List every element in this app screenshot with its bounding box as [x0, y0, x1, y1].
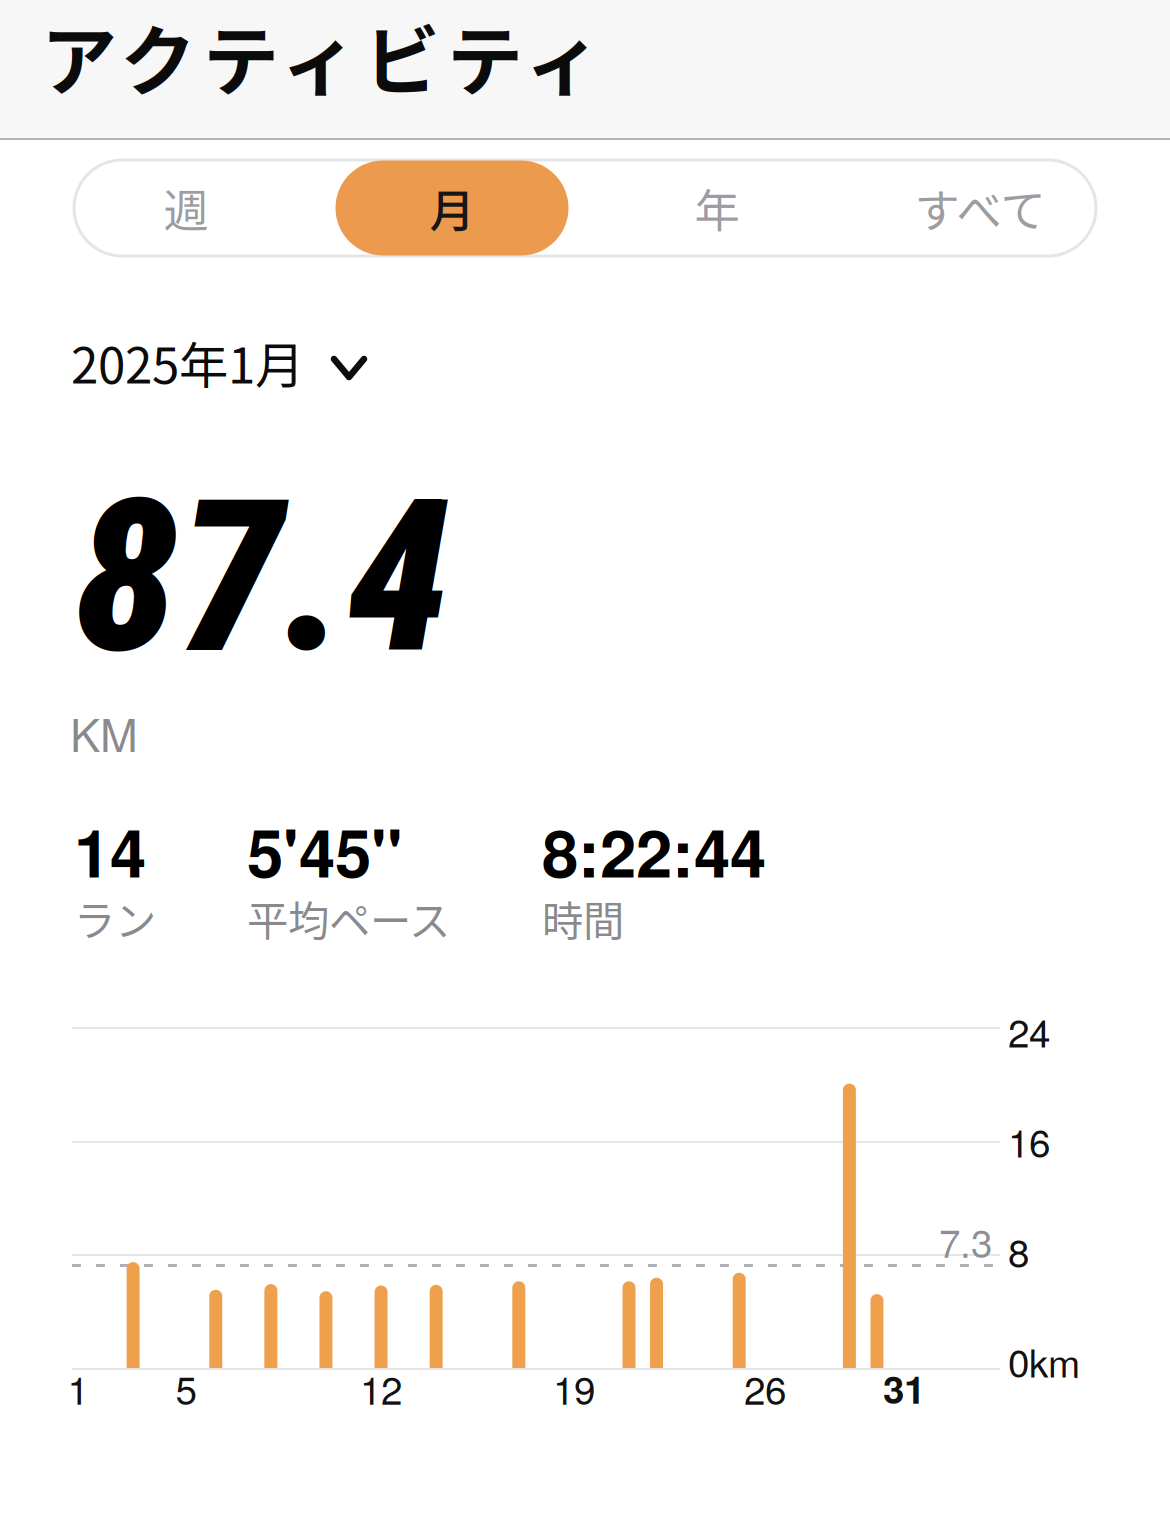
- button[interactable]: 2025年1月: [71, 327, 501, 397]
- staticText: 16: [1008, 1113, 1050, 1168]
- staticText: 5'45'': [247, 804, 403, 898]
- staticText: 14: [74, 804, 146, 898]
- staticText: 24: [1008, 1003, 1050, 1058]
- staticText: アクティビティ: [41, 1, 601, 111]
- staticText: 8:22:44: [542, 804, 766, 898]
- staticText: 平均ペース: [247, 888, 450, 948]
- button[interactable]: 年: [585, 160, 849, 256]
- staticText: 週: [163, 175, 208, 241]
- staticText: 8: [1008, 1223, 1029, 1278]
- staticText: 19: [553, 1360, 595, 1416]
- staticText: すべて: [914, 175, 1045, 241]
- staticText: 月: [429, 175, 474, 241]
- staticText: KM: [70, 700, 138, 765]
- staticText: 5: [175, 1360, 196, 1416]
- staticText: 時間: [542, 888, 624, 948]
- staticText: 12: [360, 1360, 402, 1416]
- staticText: 年: [694, 175, 739, 241]
- staticText: 87.4: [74, 454, 451, 701]
- staticText: 7.3: [939, 1213, 992, 1269]
- staticText: 0km: [1008, 1333, 1080, 1388]
- staticText: 31: [883, 1360, 925, 1416]
- staticText: 26: [744, 1360, 786, 1416]
- button[interactable]: 月: [320, 160, 584, 256]
- button[interactable]: すべて: [848, 160, 1112, 256]
- button[interactable]: 週: [54, 160, 318, 256]
- staticText: ラン: [74, 888, 156, 948]
- staticText: 2025年1月: [71, 326, 304, 398]
- staticText: 1: [67, 1360, 88, 1416]
